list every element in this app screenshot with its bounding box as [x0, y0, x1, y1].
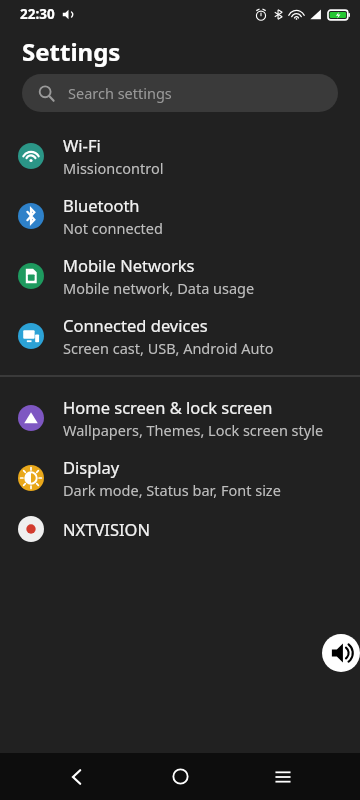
button[interactable]: Display — [0, 448, 360, 508]
staticText: Display — [63, 456, 120, 478]
button[interactable]: Back — [51, 753, 103, 800]
button[interactable]: NXTVISION — [0, 508, 360, 550]
staticText: Bluetooth — [63, 194, 140, 216]
staticText: Missioncontrol — [63, 158, 164, 178]
staticText: Mobile Networks — [63, 254, 195, 276]
button[interactable]: Search settings — [22, 74, 338, 112]
staticText: Screen cast, USB, Android Auto — [63, 338, 274, 358]
button[interactable]: Recent apps — [257, 753, 309, 800]
button[interactable]: Volume — [322, 634, 360, 672]
staticText: Mobile network, Data usage — [63, 278, 255, 298]
staticText: Wallpapers, Themes, Lock screen style — [63, 420, 324, 440]
staticText: NXTVISION — [63, 518, 150, 540]
staticText: Dark mode, Status bar, Font size — [63, 480, 281, 500]
button[interactable]: Bluetooth — [0, 186, 360, 246]
staticText: 22:30 — [20, 5, 55, 23]
button[interactable]: Wi-Fi — [0, 126, 360, 186]
staticText: Connected devices — [63, 314, 208, 336]
button[interactable]: Home — [154, 753, 206, 800]
staticText: Settings — [22, 35, 121, 68]
staticText: Not connected — [63, 218, 163, 238]
button[interactable]: Mobile Networks — [0, 246, 360, 306]
staticText: Home screen & lock screen — [63, 396, 273, 418]
button[interactable]: Connected devices — [0, 306, 360, 366]
staticText: Search settings — [68, 83, 172, 103]
staticText: Wi-Fi — [63, 134, 101, 156]
button[interactable]: Home screen & lock screen — [0, 388, 360, 448]
